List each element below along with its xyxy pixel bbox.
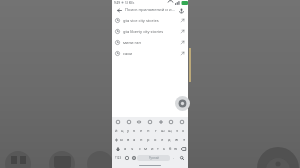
- button[interactable]: м: [143, 144, 149, 153]
- staticText: д: [168, 137, 171, 142]
- staticText: м: [144, 146, 148, 151]
- button[interactable]: Search: [177, 153, 186, 162]
- button[interactable]: й: [113, 126, 119, 135]
- button[interactable]: п: [138, 135, 145, 144]
- staticText: ь: [163, 146, 166, 151]
- button[interactable]: л: [159, 135, 166, 144]
- staticText: ю: [174, 146, 178, 151]
- button[interactable]: .: [170, 153, 177, 162]
- button[interactable]: ц: [119, 126, 125, 135]
- staticText: ф: [115, 137, 118, 142]
- button[interactable]: и: [149, 144, 155, 153]
- button[interactable]: н: [145, 126, 152, 135]
- button[interactable]: у: [125, 126, 131, 135]
- button[interactable]: Sticker: [146, 118, 154, 126]
- staticText: э: [183, 137, 185, 142]
- button[interactable]: More: [178, 118, 186, 126]
- button[interactable]: х: [180, 126, 187, 135]
- staticText: о: [154, 137, 157, 142]
- staticText: gta vice city stories: [123, 18, 178, 23]
- button[interactable]: Backspace: [179, 144, 187, 153]
- staticText: ?123: [115, 156, 122, 160]
- staticText: е: [140, 128, 143, 133]
- button[interactable]: Settings: [157, 118, 165, 126]
- staticText: ж: [175, 137, 179, 142]
- button[interactable]: Translate: [167, 118, 175, 126]
- staticText: й: [115, 128, 118, 133]
- staticText: к: [133, 128, 136, 133]
- staticText: г: [155, 128, 157, 133]
- staticText: а: [133, 137, 136, 142]
- staticText: gta liberty city stories: [123, 29, 178, 34]
- button[interactable]: мини ган: [112, 37, 188, 48]
- button[interactable]: Clipboard: [114, 118, 122, 126]
- staticText: .: [173, 155, 175, 160]
- staticText: ш: [161, 128, 165, 133]
- button[interactable]: щ: [166, 126, 173, 135]
- staticText: н: [147, 128, 150, 133]
- staticText: б: [169, 146, 172, 151]
- staticText: мини ган: [123, 40, 178, 45]
- button[interactable]: Language: [130, 153, 137, 162]
- staticText: з: [176, 128, 178, 133]
- button[interactable]: а: [131, 135, 138, 144]
- staticText: я: [124, 146, 127, 151]
- staticText: Поиск приложений и игр: [125, 7, 175, 13]
- staticText: п: [140, 137, 143, 142]
- button[interactable]: Поиск приложений и игр: [125, 7, 175, 13]
- button[interactable]: е: [138, 126, 145, 135]
- staticText: и: [151, 146, 154, 151]
- button[interactable]: ч: [129, 144, 136, 153]
- button[interactable]: ?123: [114, 153, 123, 162]
- button[interactable]: в: [125, 135, 131, 144]
- button[interactable]: о: [152, 135, 159, 144]
- button[interactable]: ю: [173, 144, 179, 153]
- button[interactable]: ш: [159, 126, 166, 135]
- button[interactable]: з: [173, 126, 180, 135]
- button[interactable]: э: [180, 135, 187, 144]
- staticText: л: [161, 137, 164, 142]
- button[interactable]: к: [131, 126, 138, 135]
- staticText: Русский: [149, 156, 159, 160]
- staticText: ч: [131, 146, 134, 151]
- staticText: х: [182, 128, 185, 133]
- button[interactable]: Back: [115, 6, 123, 14]
- button[interactable]: я: [122, 144, 129, 153]
- button[interactable]: ж: [173, 135, 180, 144]
- button[interactable]: г: [152, 126, 159, 135]
- staticText: саои: [123, 51, 178, 56]
- staticText: в: [127, 137, 130, 142]
- staticText: с: [139, 146, 141, 151]
- staticText: у: [127, 128, 130, 133]
- button[interactable]: Emoji: [123, 153, 130, 162]
- button[interactable]: Space: [137, 155, 170, 161]
- button[interactable]: б: [167, 144, 173, 153]
- staticText: 53 KB/s: [125, 1, 135, 5]
- button[interactable]: р: [145, 135, 152, 144]
- button[interactable]: GIF: [135, 118, 143, 126]
- staticText: т: [157, 146, 159, 151]
- button[interactable]: ф: [113, 135, 119, 144]
- button[interactable]: Grid: [125, 118, 133, 126]
- button[interactable]: с: [136, 144, 143, 153]
- staticText: щ: [168, 128, 172, 133]
- button[interactable]: Screen recorder: [175, 96, 190, 111]
- button[interactable]: Shift: [113, 144, 122, 153]
- button[interactable]: д: [166, 135, 173, 144]
- button[interactable]: саои: [112, 48, 188, 59]
- button[interactable]: т: [155, 144, 161, 153]
- staticText: ы: [120, 137, 124, 142]
- button[interactable]: Voice search: [177, 6, 185, 14]
- staticText: 9:29: [114, 1, 120, 5]
- button[interactable]: gta vice city stories: [112, 15, 188, 26]
- button[interactable]: gta liberty city stories: [112, 26, 188, 37]
- button[interactable]: ь: [161, 144, 167, 153]
- staticText: ц: [121, 128, 124, 133]
- button[interactable]: ы: [119, 135, 125, 144]
- staticText: р: [147, 137, 150, 142]
